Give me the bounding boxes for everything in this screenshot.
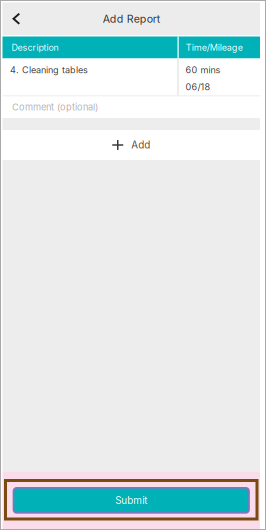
staticText: 4. Cleaning tables	[10, 64, 88, 75]
staticText: Add	[131, 139, 150, 151]
staticText: Comment (optional)	[12, 102, 98, 113]
staticText: Time/Mileage	[186, 42, 243, 53]
staticText: Add Report	[103, 12, 160, 25]
button[interactable]: Submit	[13, 487, 250, 514]
button[interactable]: Add	[2, 130, 260, 160]
staticText: Submit	[115, 494, 147, 506]
button[interactable]: Back	[2, 2, 36, 35]
staticText: 06/18	[185, 81, 210, 92]
staticText: Description	[11, 42, 58, 53]
staticText: 60 mins	[185, 64, 220, 75]
